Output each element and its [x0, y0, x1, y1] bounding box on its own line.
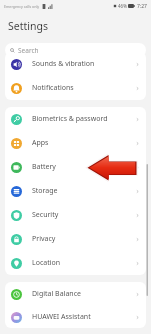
button[interactable]: Storage: [5, 179, 146, 203]
staticText: Digital Balance: [32, 289, 135, 299]
staticText: Apps: [32, 138, 135, 148]
staticText: Security: [32, 210, 135, 220]
button[interactable]: Privacy: [5, 227, 146, 251]
button[interactable]: Search: [5, 43, 146, 57]
staticText: HUAWEI Assistant: [32, 312, 135, 322]
staticText: Emergency calls only: [4, 4, 40, 9]
button[interactable]: Notifications: [5, 76, 146, 100]
staticText: Search: [18, 46, 39, 55]
staticText: Battery: [32, 162, 135, 172]
button[interactable]: HUAWEI Assistant: [5, 306, 146, 328]
staticText: 46%: [118, 3, 127, 9]
staticText: Location: [32, 258, 135, 268]
button[interactable]: Battery: [5, 155, 146, 179]
button[interactable]: Biometrics & password: [5, 107, 146, 131]
staticText: Settings: [8, 19, 48, 33]
button[interactable]: Apps: [5, 131, 146, 155]
staticText: Notifications: [32, 83, 135, 93]
staticText: 7:27: [137, 3, 147, 10]
staticText: Sounds & vibration: [32, 59, 135, 69]
staticText: Storage: [32, 186, 135, 196]
staticText: Biometrics & password: [32, 114, 135, 124]
button[interactable]: Digital Balance: [5, 282, 146, 306]
button[interactable]: Location: [5, 251, 146, 275]
staticText: Privacy: [32, 234, 135, 244]
other: Pointer arrow: [0, 0, 151, 334]
button[interactable]: Sounds & vibration: [5, 52, 146, 76]
button[interactable]: Security: [5, 203, 146, 227]
